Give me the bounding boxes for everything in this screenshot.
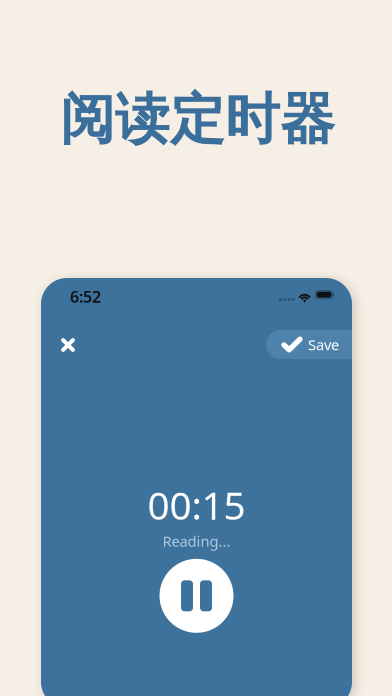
- button[interactable]: Pause: [159, 559, 233, 633]
- staticText: Reading...: [162, 531, 230, 551]
- staticText: 阅读定时器: [60, 86, 335, 153]
- button[interactable]: Save: [266, 330, 370, 359]
- button[interactable]: Close: [53, 330, 83, 360]
- staticText: 00:15: [147, 479, 245, 530]
- staticText: Save: [308, 335, 339, 354]
- staticText: 6:52: [70, 286, 101, 307]
